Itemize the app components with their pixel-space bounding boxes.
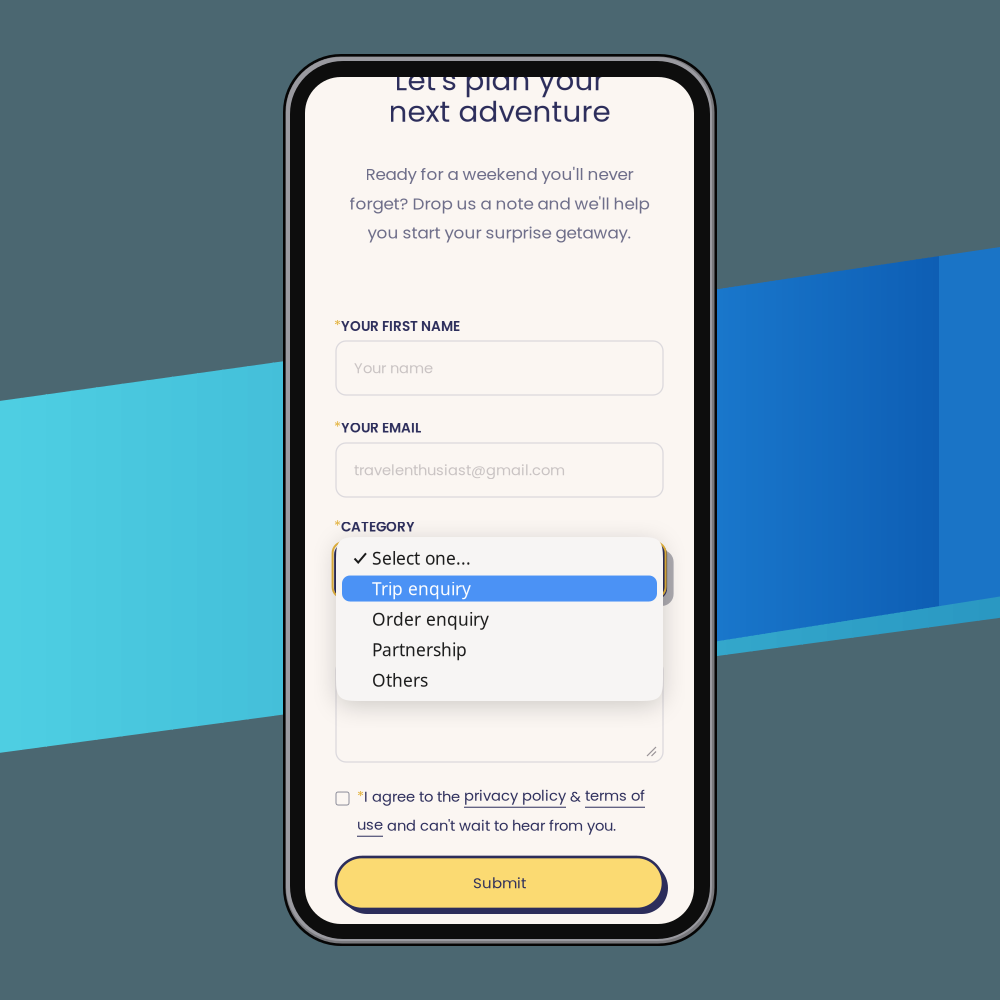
staticText: Let's plan your bbox=[394, 59, 604, 101]
staticText: terms of bbox=[585, 785, 645, 806]
staticText: use bbox=[357, 814, 383, 835]
button[interactable]: Category bbox=[333, 542, 674, 606]
button[interactable]: Your name bbox=[336, 341, 663, 395]
staticText: Others bbox=[372, 668, 428, 691]
staticText: travelenthusiast@gmail.com bbox=[354, 460, 565, 480]
staticText: * bbox=[357, 786, 364, 807]
staticText: Submit bbox=[473, 872, 526, 893]
button[interactable] bbox=[336, 660, 663, 762]
staticText: Partnership bbox=[372, 638, 467, 661]
staticText: and can't wait to hear from you. bbox=[383, 815, 616, 836]
staticText: next adventure bbox=[388, 91, 610, 132]
button[interactable]: use bbox=[357, 814, 383, 837]
staticText: & bbox=[566, 786, 585, 807]
button[interactable]: Trip enquiry bbox=[342, 573, 657, 604]
staticText: CATEGORY bbox=[341, 517, 415, 536]
button[interactable]: Partnership bbox=[342, 634, 657, 665]
staticText: * bbox=[334, 417, 341, 437]
staticText: Select one... bbox=[372, 546, 471, 569]
staticText: Trip enquiry bbox=[372, 577, 471, 600]
staticText: Ready for a weekend you'll never bbox=[365, 162, 633, 186]
staticText: forget? Drop us a note and we'll help bbox=[349, 192, 649, 215]
staticText: * bbox=[334, 315, 341, 336]
button[interactable]: terms of bbox=[585, 785, 645, 808]
staticText: YOUR FIRST NAME bbox=[341, 317, 460, 336]
button[interactable]: Order enquiry bbox=[342, 604, 657, 634]
staticText: Your name bbox=[354, 358, 433, 378]
staticText: YOUR EMAIL bbox=[341, 418, 421, 437]
staticText: Order enquiry bbox=[372, 607, 489, 630]
staticText: you start your surprise getaway. bbox=[367, 221, 631, 244]
button[interactable]: Others bbox=[342, 665, 657, 695]
button[interactable]: Submit bbox=[336, 857, 668, 914]
staticText: * bbox=[334, 516, 341, 536]
button[interactable]: travelenthusiast@gmail.com bbox=[336, 443, 663, 497]
button[interactable]: Select one... bbox=[342, 543, 657, 573]
button[interactable]: I agree to the privacy policy and terms … bbox=[336, 788, 357, 805]
staticText: privacy policy bbox=[464, 785, 566, 806]
button[interactable]: privacy policy bbox=[464, 785, 566, 808]
staticText: I agree to the bbox=[364, 786, 464, 807]
